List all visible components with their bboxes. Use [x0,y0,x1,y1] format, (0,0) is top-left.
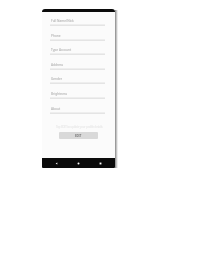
button[interactable]: Gender [50,76,105,88]
staticText: Gender [51,77,63,81]
button[interactable]: Phone [50,33,105,45]
staticText: EDIT [75,134,82,138]
staticText: Phone [51,34,61,38]
button[interactable]: Recent apps [89,158,111,168]
button[interactable]: Brightness [50,91,105,103]
button[interactable]: Type Account [50,47,105,59]
button[interactable]: Address [50,62,105,74]
button[interactable]: EDIT [59,132,98,139]
staticText: Type Account [51,48,72,52]
button[interactable]: Home [67,158,89,168]
staticText: Brightness [51,92,68,96]
button[interactable]: Back [46,158,67,168]
button[interactable]: Full Name/Nick [50,18,105,30]
button[interactable]: About [50,106,105,118]
staticText: Tap EDIT to update your profile details [56,125,103,129]
staticText: About [51,107,61,111]
staticText: Full Name/Nick [51,19,74,23]
staticText: Address [51,63,64,67]
